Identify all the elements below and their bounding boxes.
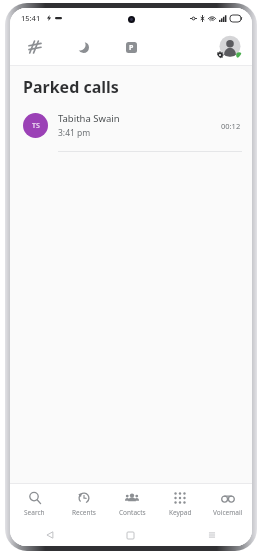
staticText: 3:41 pm (58, 127, 91, 139)
staticText: Contacts (119, 508, 146, 517)
button[interactable]: Parked calls (118, 34, 144, 60)
button[interactable]: Recent apps (171, 524, 252, 546)
button[interactable]: Do not disturb (70, 34, 96, 60)
button[interactable]: Search (10, 484, 59, 524)
staticText: 15:41 (21, 13, 41, 23)
staticText: 00:12 (221, 121, 241, 131)
staticText: Recents (72, 508, 96, 517)
button[interactable]: Voicemail (204, 484, 252, 524)
staticText: P (129, 43, 134, 53)
button[interactable]: Merge calls (22, 34, 48, 60)
button[interactable]: Keypad (156, 484, 204, 524)
button[interactable]: Contacts (108, 484, 156, 524)
button[interactable]: Back (10, 524, 90, 546)
button[interactable]: Account and settings (215, 33, 243, 61)
staticText: Voicemail (213, 508, 243, 517)
staticText: Keypad (169, 508, 192, 517)
button[interactable]: Home (90, 524, 171, 546)
button[interactable]: TS (10, 112, 252, 152)
staticText: TS (32, 121, 40, 131)
staticText: Parked calls (23, 76, 119, 98)
staticText: Tabitha Swain (58, 112, 120, 125)
staticText: Search (24, 508, 45, 517)
button[interactable]: Recents (59, 484, 108, 524)
